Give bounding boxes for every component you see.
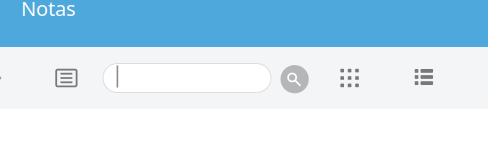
- button[interactable]: Search: [280, 65, 309, 93]
- button[interactable]: Notes: [55, 69, 77, 87]
- button[interactable]: Search field: [103, 63, 271, 92]
- staticText: Notas: [21, 0, 76, 22]
- button[interactable]: List view: [414, 67, 433, 86]
- button[interactable]: Grid view: [340, 69, 359, 87]
